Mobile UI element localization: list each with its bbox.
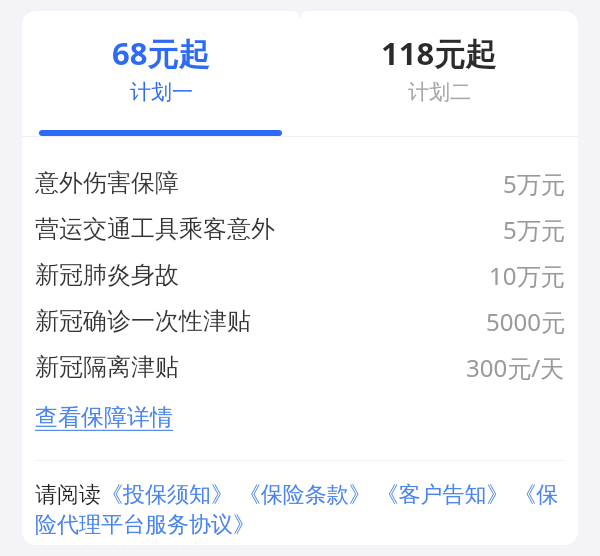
button[interactable]: 118元起 — [300, 11, 578, 126]
staticText: 查看保障详情 — [35, 403, 173, 432]
staticText: 5万元 — [503, 213, 565, 246]
staticText: 68元起 — [112, 32, 210, 74]
button[interactable]: 意外伤害保障 — [22, 160, 578, 206]
button[interactable]: 新冠确诊一次性津贴 — [22, 298, 578, 344]
staticText: 新冠肺炎身故 — [35, 260, 179, 290]
staticText: 5000元 — [486, 305, 565, 338]
staticText: 300元/天 — [466, 351, 565, 384]
staticText: 新冠隔离津贴 — [35, 352, 179, 382]
button[interactable]: 请阅读《投保须知》 《保险条款》 《客户告知》 《保险代理平台服务协议》 — [35, 478, 565, 539]
staticText: 意外伤害保障 — [35, 168, 179, 198]
staticText: 118元起 — [381, 32, 497, 74]
button[interactable]: 新冠肺炎身故 — [22, 252, 578, 298]
staticText: 新冠确诊一次性津贴 — [35, 306, 251, 336]
button[interactable]: 68元起 — [22, 11, 300, 126]
button[interactable]: 营运交通工具乘客意外 — [22, 206, 578, 252]
button[interactable]: 查看保障详情 — [35, 401, 173, 434]
button[interactable]: 新冠隔离津贴 — [22, 344, 578, 390]
staticText: 营运交通工具乘客意外 — [35, 214, 275, 244]
staticText: 10万元 — [489, 259, 565, 292]
staticText: 计划二 — [408, 79, 471, 105]
staticText: 计划一 — [130, 79, 193, 105]
staticText: 5万元 — [503, 167, 565, 200]
staticText: 请阅读《投保须知》 《保险条款》 《客户告知》 《保险代理平台服务协议》 — [35, 478, 565, 539]
